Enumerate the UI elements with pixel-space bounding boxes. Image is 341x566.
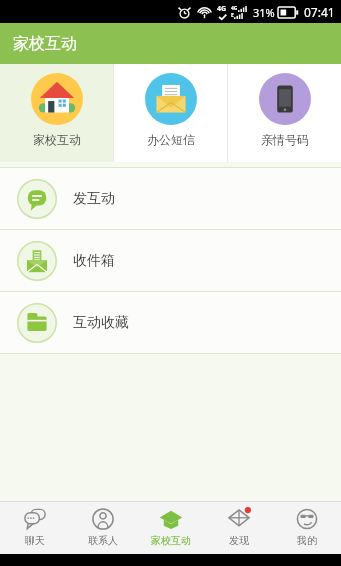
button[interactable]: Profile (273, 502, 341, 554)
staticText: 发现 (229, 534, 249, 547)
staticText: 家校互动 (151, 534, 191, 547)
staticText: 我的 (297, 534, 317, 547)
staticText: 发互动 (73, 190, 115, 208)
button[interactable]: 办公短信 (114, 64, 227, 162)
staticText: E (231, 12, 234, 19)
button[interactable]: Contacts (69, 502, 137, 554)
button[interactable]: 家校互动 (0, 64, 113, 162)
staticText: 4G (231, 5, 238, 12)
staticText: 收件箱 (73, 252, 115, 270)
staticText: 31% (253, 5, 275, 20)
button[interactable]: 发互动 (0, 168, 341, 229)
button[interactable]: Discover (205, 502, 273, 554)
button[interactable]: 互动收藏 (0, 292, 341, 353)
button[interactable]: 收件箱 (0, 230, 341, 291)
staticText: 家校互动 (33, 132, 81, 147)
button[interactable]: Home school (137, 502, 205, 554)
staticText: 办公短信 (147, 132, 195, 147)
button[interactable]: 亲情号码 (228, 64, 341, 162)
staticText: 07:41 (304, 4, 335, 20)
staticText: 家校互动 (13, 34, 77, 54)
staticText: 联系人 (88, 534, 118, 547)
staticText: 4G (217, 4, 227, 14)
staticText: 聊天 (25, 534, 45, 547)
staticText: 亲情号码 (261, 132, 309, 147)
button[interactable]: Chat (0, 502, 69, 554)
staticText: 互动收藏 (73, 314, 129, 332)
